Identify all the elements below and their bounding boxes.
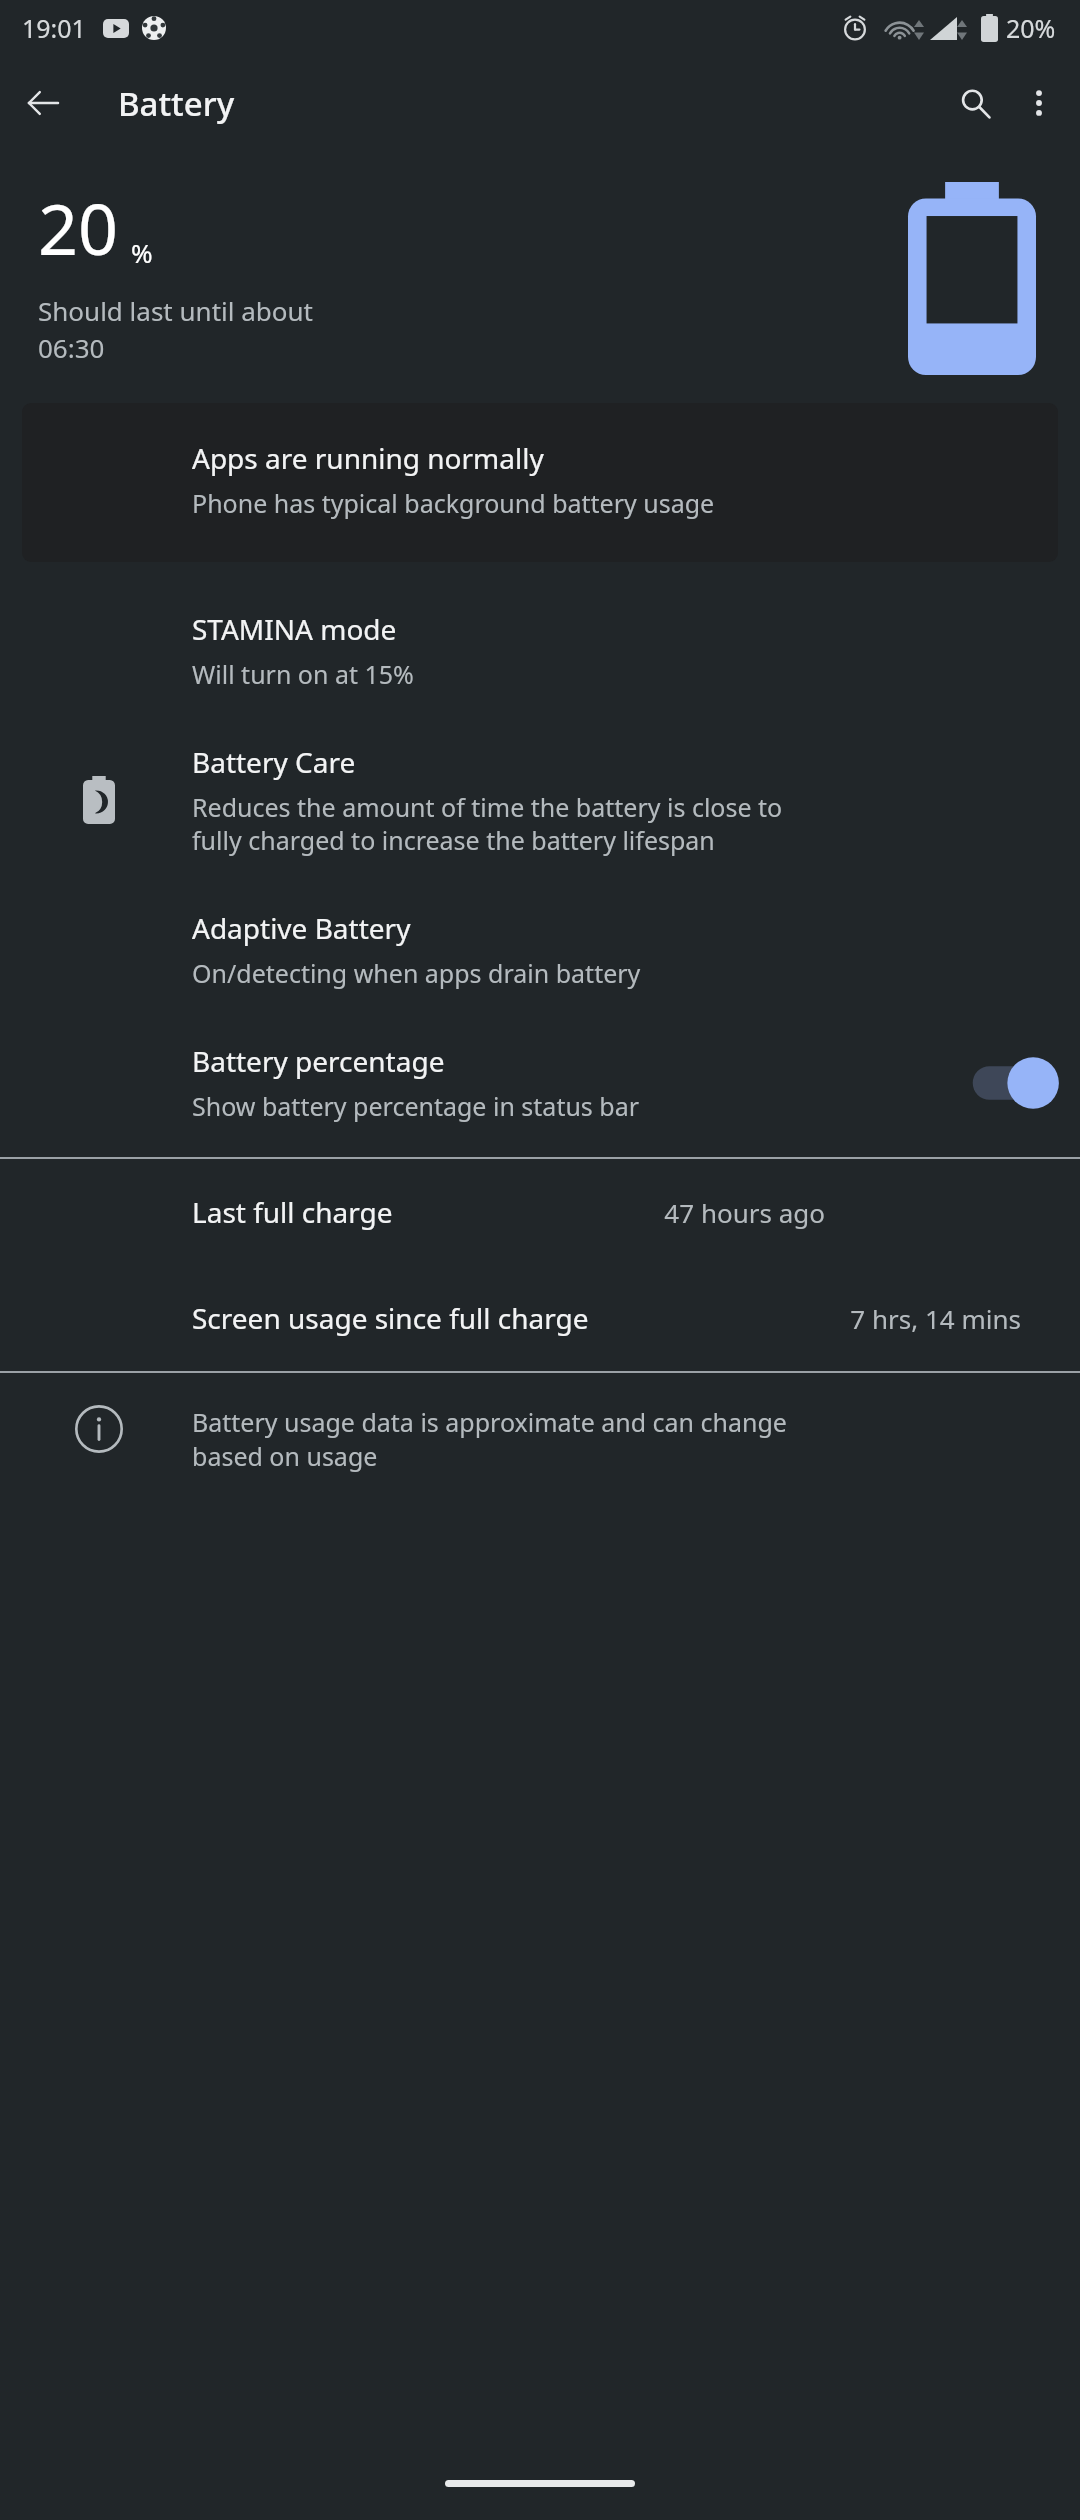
staticText: 20 (38, 180, 119, 275)
staticText: Battery (118, 81, 235, 126)
staticText: Phone has typical background battery usa… (192, 486, 715, 520)
staticText: Battery usage data is approximate and ca… (192, 1405, 1050, 1474)
button[interactable]: Apps are running normally (22, 403, 1058, 562)
staticText: 19:01 (22, 11, 86, 45)
staticText: Last full charge (192, 1193, 393, 1231)
button[interactable]: Battery Care (0, 717, 1080, 883)
button[interactable]: STAMINA mode (0, 584, 1080, 717)
staticText: 47 hours ago (664, 1195, 825, 1230)
staticText: Battery percentage (192, 1042, 445, 1080)
staticText: On/detecting when apps drain battery (192, 956, 641, 990)
button[interactable] (966, 1055, 1062, 1111)
staticText: Show battery percentage in status bar (192, 1089, 640, 1123)
button[interactable]: Last full charge (0, 1159, 1080, 1265)
button[interactable]: Adaptive Battery (0, 883, 1080, 1016)
staticText: Will turn on at 15% (192, 657, 414, 691)
staticText: Adaptive Battery (192, 909, 411, 947)
staticText: Reduces the amount of time the battery i… (192, 790, 783, 857)
button[interactable]: Battery percentage (0, 1016, 1080, 1149)
staticText: % (131, 235, 153, 270)
staticText: Screen usage since full charge (192, 1299, 589, 1337)
button[interactable]: Back (12, 72, 74, 134)
staticText: 20% (1006, 11, 1056, 45)
button[interactable]: More options (1008, 72, 1070, 134)
button[interactable]: Search (942, 70, 1008, 136)
staticText: 7 hrs, 14 mins (850, 1301, 1021, 1336)
staticText: Battery Care (192, 743, 356, 781)
button[interactable]: Screen usage since full charge (0, 1265, 1080, 1371)
staticText: Should last until about 06:30 (38, 293, 313, 366)
staticText: Apps are running normally (192, 439, 544, 477)
staticText: STAMINA mode (192, 610, 397, 648)
